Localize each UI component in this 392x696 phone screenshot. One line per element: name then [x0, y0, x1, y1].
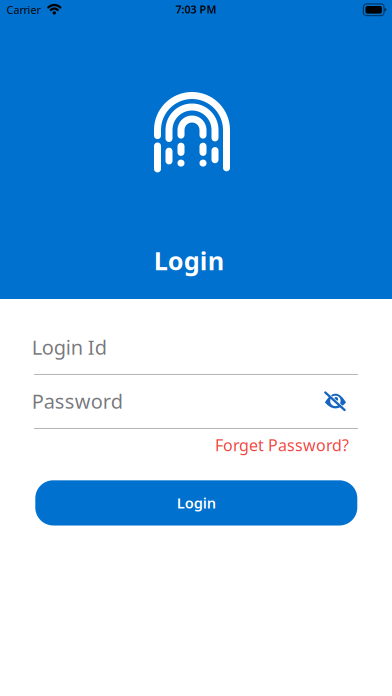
button[interactable]: Show password [322, 388, 348, 414]
staticText: Login Id [32, 334, 107, 360]
button[interactable]: Forget Password? [215, 434, 349, 455]
staticText: 7:03 PM [175, 2, 216, 16]
button[interactable]: Login [35, 480, 357, 525]
staticText: Forget Password? [215, 434, 349, 455]
staticText: Login [154, 243, 224, 277]
staticText: Password [32, 388, 123, 414]
staticText: Login [177, 493, 216, 513]
staticText: Carrier [6, 3, 40, 17]
button[interactable]: Login Id [34, 334, 358, 375]
button[interactable]: Password [34, 388, 358, 429]
